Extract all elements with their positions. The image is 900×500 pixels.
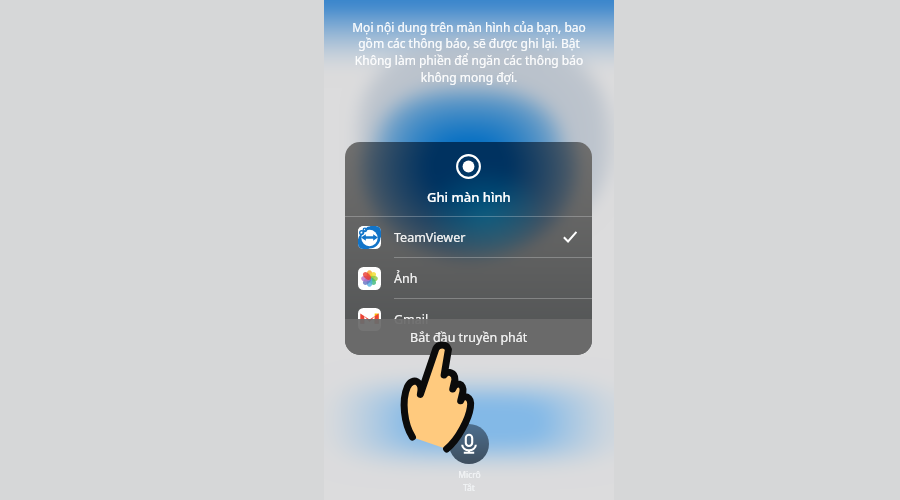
staticText: Bắt đầu truyền phát	[410, 329, 528, 346]
staticText: TeamViewer	[394, 229, 466, 246]
button[interactable]: Gmail	[345, 299, 592, 339]
button[interactable]: Micrô Tắt	[449, 424, 489, 464]
staticText: Mọi nội dung trên màn hình của bạn, bao …	[352, 19, 586, 86]
button[interactable]: Bắt đầu truyền phát	[345, 319, 592, 355]
button[interactable]: Ảnh	[345, 258, 592, 298]
button[interactable]: TeamViewer	[345, 217, 592, 257]
staticText: Ghi màn hình	[427, 188, 511, 206]
staticText: Ảnh	[394, 270, 418, 287]
staticText: Tắt	[463, 482, 475, 494]
staticText: Gmail	[394, 311, 429, 328]
staticText: Micrô	[458, 469, 481, 481]
